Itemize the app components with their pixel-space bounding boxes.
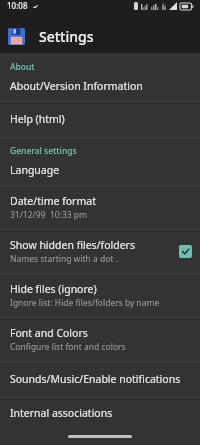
button[interactable]: Help (html) xyxy=(0,102,200,137)
button[interactable]: Hide files (ignore) xyxy=(0,274,200,317)
staticText: Date/time format xyxy=(10,194,96,208)
staticText: 10:08 xyxy=(7,0,28,11)
staticText: About xyxy=(10,61,35,73)
button[interactable]: Sounds/Music/Enable notifications xyxy=(0,362,200,397)
button[interactable]: Font and Colors xyxy=(0,318,200,361)
button[interactable]: Total Commander xyxy=(8,28,25,45)
staticText: Sounds/Music/Enable notifications xyxy=(10,372,181,386)
staticText: Configure list font and colors xyxy=(10,341,126,353)
staticText: Internal associations xyxy=(10,406,113,419)
staticText: Show hidden files/folders xyxy=(10,238,135,252)
staticText: General settings xyxy=(10,145,77,157)
button[interactable]: About/Version Information xyxy=(0,74,200,101)
button[interactable]: Language xyxy=(0,158,200,185)
button[interactable]: Date/time format xyxy=(0,186,200,229)
button[interactable]: Show hidden files/folders xyxy=(0,230,200,273)
staticText: Help (html) xyxy=(10,112,65,126)
staticText: About/Version Information xyxy=(10,79,143,93)
staticText: Settings xyxy=(39,27,94,46)
staticText: Names starting with a dot . xyxy=(10,253,118,265)
staticText: Ignore list: Hide files/folders by name xyxy=(10,297,160,309)
staticText: Hide files (ignore) xyxy=(10,282,97,296)
staticText: 31/12/99 10:33 pm xyxy=(10,209,88,221)
staticText: Font and Colors xyxy=(10,326,88,340)
button[interactable]: Internal associations xyxy=(0,398,200,427)
staticText: Language xyxy=(10,163,60,177)
